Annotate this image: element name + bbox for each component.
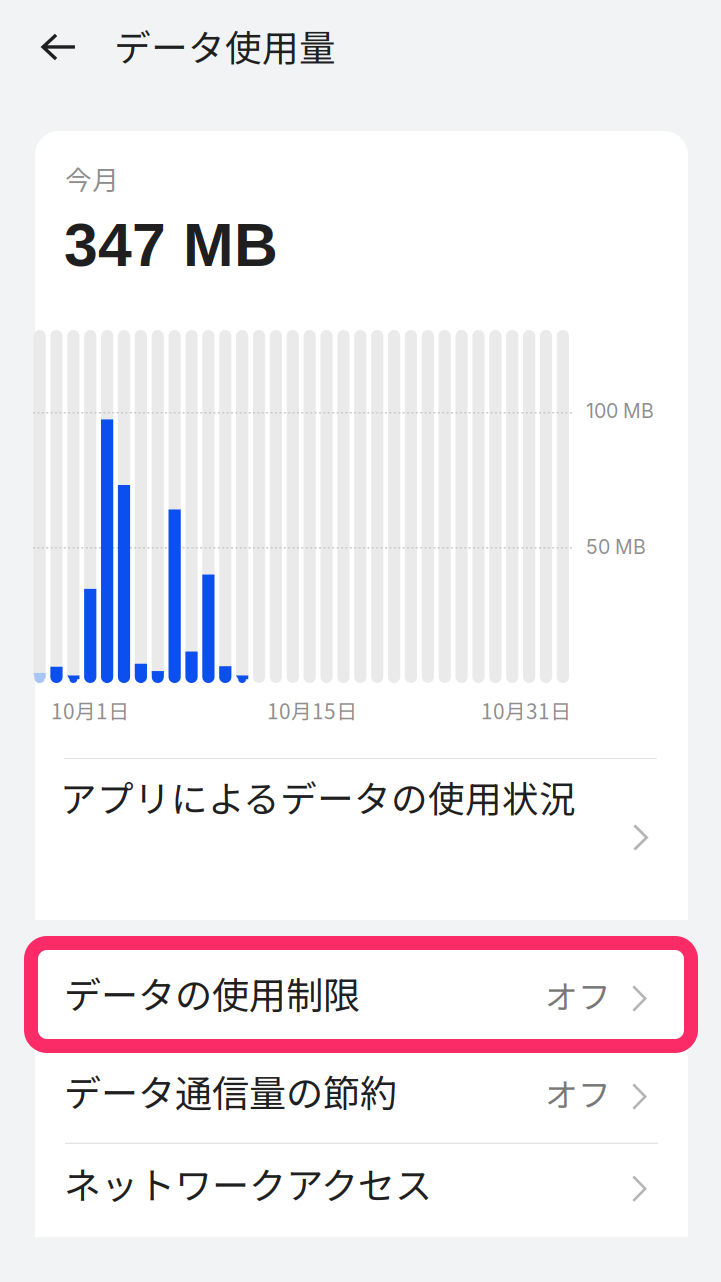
button[interactable]: アプリによるデータの使用状況 (35, 759, 688, 920)
staticText: オフ (545, 971, 611, 1018)
staticText: 50 MB (586, 535, 646, 559)
staticText: データの使用制限 (64, 966, 360, 1020)
staticText: 100 MB (586, 399, 654, 423)
staticText: 10月1日 (51, 695, 129, 725)
staticText: データ通信量の節約 (64, 1064, 397, 1118)
staticText: 347 MB (64, 211, 278, 279)
staticText: 10月15日 (267, 695, 357, 725)
staticText: データ使用量 (114, 19, 336, 72)
button[interactable]: ネットワークアクセス (35, 1144, 688, 1237)
staticText: 今月 (65, 159, 119, 198)
button[interactable]: データ通信量の節約 (35, 1045, 688, 1143)
staticText: オフ (545, 1069, 611, 1116)
button[interactable]: データの使用制限 (35, 940, 688, 1043)
button[interactable]: Back (21, 11, 97, 83)
staticText: 10月31日 (481, 695, 571, 725)
staticText: アプリによるデータの使用状況 (60, 770, 576, 823)
staticText: ネットワークアクセス (64, 1156, 432, 1210)
